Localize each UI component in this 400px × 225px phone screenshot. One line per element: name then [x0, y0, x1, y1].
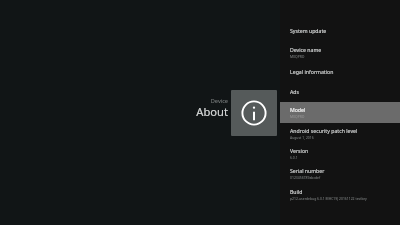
button[interactable]: Device name — [280, 40, 400, 64]
button[interactable]: Legal information — [280, 64, 400, 83]
staticText: Serial number — [290, 167, 325, 174]
staticText: Build — [290, 188, 303, 195]
staticText: 0123456789abcdef — [290, 175, 321, 180]
staticText: MXQPRO — [290, 54, 305, 59]
button[interactable]: System update — [280, 22, 400, 40]
button[interactable]: Model — [280, 102, 400, 123]
staticText: Device name — [290, 46, 322, 53]
staticText: Legal information — [290, 68, 334, 75]
staticText: MXQPRO — [290, 114, 305, 119]
button[interactable]: Android security patch level — [280, 123, 400, 144]
button[interactable]: About device — [231, 90, 277, 136]
staticText: Ads — [290, 88, 299, 95]
button[interactable]: Version — [280, 144, 400, 163]
staticText: About — [196, 104, 228, 119]
button[interactable]: Build — [280, 184, 400, 205]
staticText: 6.0.1 — [290, 155, 298, 160]
staticText: Android security patch level — [290, 127, 358, 134]
staticText: Model — [290, 106, 306, 113]
button[interactable]: Ads — [280, 83, 400, 102]
staticText: Device — [210, 97, 228, 105]
button[interactable]: Serial number — [280, 163, 400, 184]
staticText: August 1, 2016 — [290, 135, 314, 140]
staticText: System update — [290, 27, 327, 34]
staticText: p212-userdebug 6.0.1 MHC19J 20161122 tes… — [290, 196, 367, 201]
staticText: Version — [290, 147, 309, 154]
